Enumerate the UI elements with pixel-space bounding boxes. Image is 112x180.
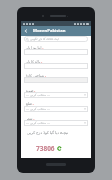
button[interactable]: --- منتخب کریں --- <box>26 106 86 112</box>
staticText: --- منتخب کریں --- <box>26 93 51 97</box>
staticText: --- منتخب کریں --- <box>26 121 51 125</box>
button[interactable]: اپنے علاقے کا نام لکھیں <box>26 36 86 42</box>
staticText: والد کا نام * <box>26 59 88 64</box>
button[interactable]: --- منتخب کریں --- <box>26 120 86 126</box>
button[interactable] <box>26 77 86 83</box>
button[interactable]: --- منتخب کریں --- <box>26 92 86 98</box>
staticText: نیچے دیا گیا کوڈ درج کریں <box>27 130 85 136</box>
staticText: اپنا پورا نام * <box>26 45 88 50</box>
staticText: صوبہ * <box>26 88 88 93</box>
button[interactable] <box>26 63 86 69</box>
staticText: MoeenPakistan <box>33 28 66 34</box>
staticText: ضلع * <box>26 102 88 106</box>
staticText: اپنے علاقے کا نام لکھیں <box>30 37 60 41</box>
staticText: 73806 <box>36 144 55 153</box>
button[interactable] <box>26 49 86 55</box>
staticText: شہر * <box>26 116 88 121</box>
staticText: --- منتخب کریں --- <box>26 107 51 111</box>
staticText: شناختی کارڈ * <box>26 73 88 78</box>
button[interactable]: Back <box>21 26 30 36</box>
button[interactable]: Refresh captcha <box>57 146 62 151</box>
